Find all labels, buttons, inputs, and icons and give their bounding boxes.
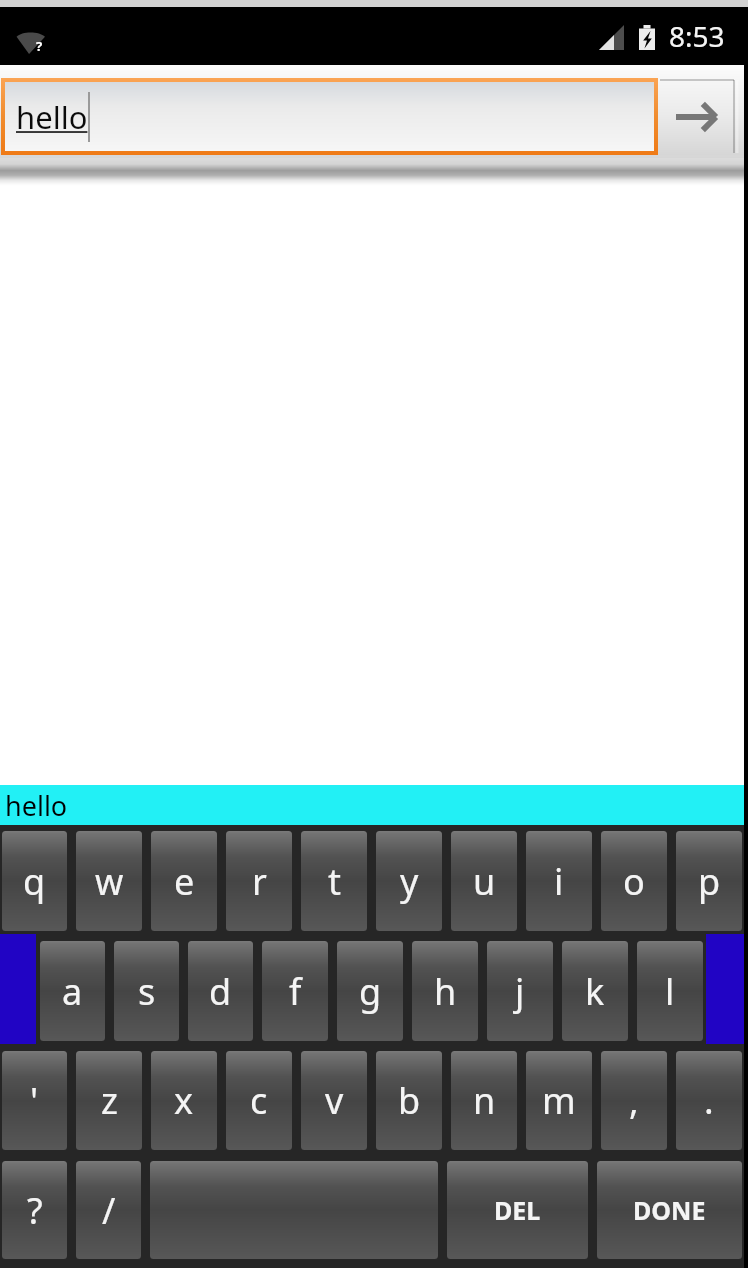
- staticText: z: [101, 1076, 118, 1125]
- button[interactable]: hello: [5, 82, 654, 151]
- button[interactable]: s: [114, 941, 179, 1041]
- staticText: ': [30, 1076, 39, 1125]
- button[interactable]: b: [376, 1051, 442, 1150]
- button[interactable]: z: [76, 1051, 142, 1150]
- button[interactable]: w: [76, 831, 142, 931]
- button[interactable]: i: [526, 831, 592, 931]
- button[interactable]: r: [226, 831, 292, 931]
- button[interactable]: .: [676, 1051, 742, 1150]
- button[interactable]: Space: [150, 1161, 438, 1259]
- staticText: p: [698, 857, 721, 906]
- button[interactable]: k: [562, 941, 628, 1041]
- staticText: f: [289, 967, 302, 1016]
- staticText: w: [95, 857, 124, 906]
- button[interactable]: c: [226, 1051, 292, 1150]
- button[interactable]: ,: [601, 1051, 667, 1150]
- button[interactable]: m: [526, 1051, 592, 1150]
- button[interactable]: d: [188, 941, 253, 1041]
- staticText: ?: [36, 37, 43, 55]
- button[interactable]: e: [151, 831, 217, 931]
- staticText: .: [704, 1076, 714, 1125]
- staticText: /: [102, 1186, 116, 1235]
- button[interactable]: v: [301, 1051, 367, 1150]
- staticText: i: [554, 857, 564, 906]
- button[interactable]: y: [376, 831, 442, 931]
- button[interactable]: u: [451, 831, 517, 931]
- staticText: u: [473, 857, 496, 906]
- staticText: s: [138, 967, 156, 1016]
- staticText: e: [174, 857, 195, 906]
- button[interactable]: f: [262, 941, 328, 1041]
- staticText: ,: [629, 1076, 639, 1125]
- button[interactable]: ': [2, 1051, 67, 1150]
- staticText: hello: [5, 787, 68, 824]
- staticText: b: [398, 1076, 421, 1125]
- button[interactable]: /: [76, 1161, 141, 1259]
- staticText: v: [325, 1076, 344, 1125]
- staticText: 8:53: [669, 17, 725, 55]
- staticText: r: [252, 857, 267, 906]
- staticText: c: [250, 1076, 268, 1125]
- staticText: n: [473, 1076, 496, 1125]
- button[interactable]: x: [151, 1051, 217, 1150]
- button[interactable]: a: [40, 941, 105, 1041]
- staticText: hello: [16, 96, 88, 138]
- button[interactable]: ?: [2, 1161, 67, 1259]
- staticText: h: [434, 967, 457, 1016]
- staticText: g: [359, 967, 382, 1016]
- staticText: k: [585, 967, 605, 1016]
- staticText: x: [174, 1076, 194, 1125]
- staticText: ?: [27, 1186, 43, 1235]
- button[interactable]: g: [337, 941, 403, 1041]
- button[interactable]: Search: [658, 78, 744, 155]
- staticText: o: [623, 857, 645, 906]
- button[interactable]: j: [487, 941, 553, 1041]
- button[interactable]: p: [676, 831, 742, 931]
- button[interactable]: h: [412, 941, 478, 1041]
- button[interactable]: DEL: [447, 1161, 588, 1259]
- staticText: j: [515, 967, 525, 1016]
- button[interactable]: hello: [0, 785, 744, 825]
- button[interactable]: o: [601, 831, 667, 931]
- staticText: DONE: [633, 1193, 706, 1227]
- staticText: m: [542, 1076, 576, 1125]
- staticText: l: [665, 967, 675, 1016]
- button[interactable]: n: [451, 1051, 517, 1150]
- staticText: t: [328, 857, 341, 906]
- staticText: y: [400, 857, 419, 906]
- staticText: q: [23, 857, 46, 906]
- staticText: a: [62, 967, 83, 1016]
- button[interactable]: DONE: [597, 1161, 742, 1259]
- button[interactable]: l: [637, 941, 703, 1041]
- staticText: DEL: [494, 1193, 541, 1227]
- staticText: d: [209, 967, 232, 1016]
- button[interactable]: q: [2, 831, 67, 931]
- button[interactable]: t: [301, 831, 367, 931]
